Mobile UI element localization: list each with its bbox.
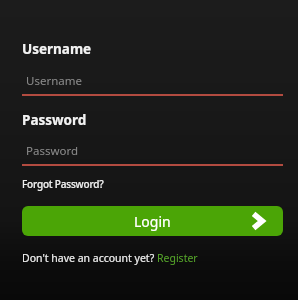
button[interactable]: Forgot Password? (22, 177, 104, 191)
staticText: Login (134, 212, 171, 231)
button[interactable]: Username (22, 66, 283, 96)
staticText: Don't have an account yet? (22, 251, 157, 265)
staticText: Register (157, 251, 198, 265)
button[interactable]: Password (22, 136, 283, 166)
button[interactable]: Login (22, 206, 283, 236)
staticText: Username (22, 40, 92, 58)
button[interactable]: Register (157, 251, 198, 265)
staticText: Password (22, 111, 87, 129)
staticText: Forgot Password? (22, 177, 104, 191)
staticText: Password (26, 143, 79, 159)
staticText: Username (26, 73, 82, 89)
